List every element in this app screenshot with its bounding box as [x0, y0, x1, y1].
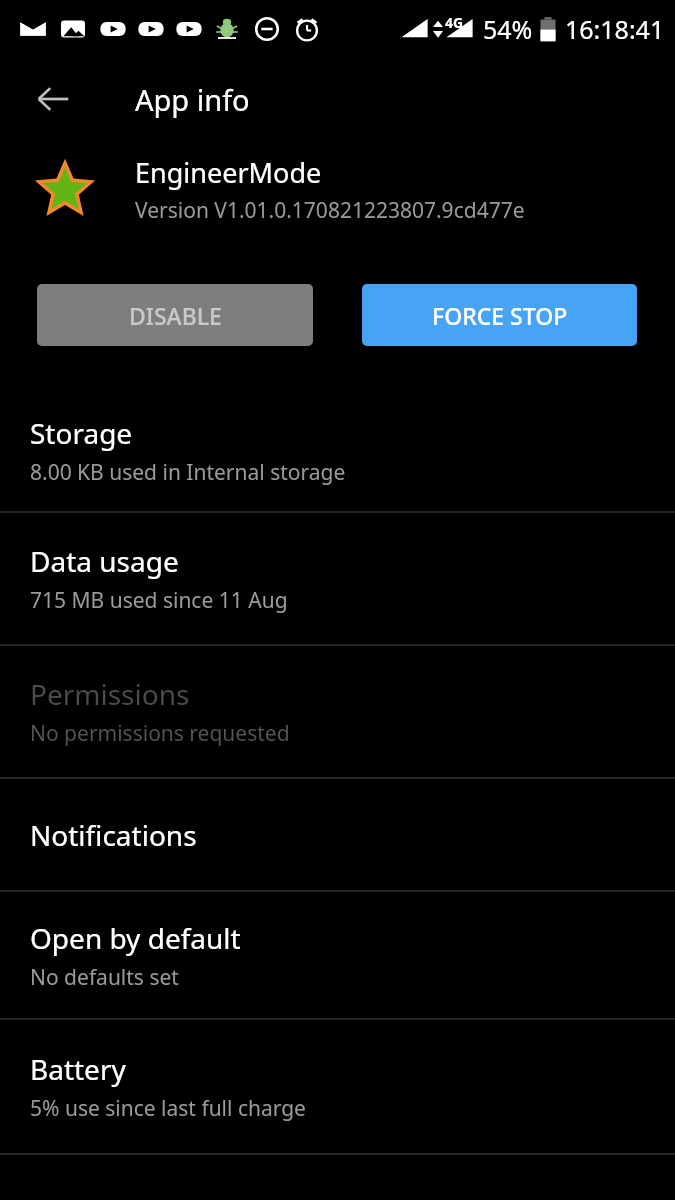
- staticText: Permissions: [30, 675, 190, 713]
- button[interactable]: Permissions: [0, 646, 675, 777]
- button[interactable]: FORCE STOP: [362, 284, 637, 346]
- staticText: DISABLE: [129, 300, 222, 331]
- button[interactable]: Back: [20, 66, 86, 132]
- staticText: 5% use since last full charge: [30, 1094, 306, 1123]
- staticText: 54%: [483, 12, 533, 46]
- staticText: Notifications: [30, 816, 197, 854]
- staticText: 4G: [445, 13, 464, 32]
- button[interactable]: Battery: [0, 1020, 675, 1153]
- staticText: Storage: [30, 414, 133, 452]
- button[interactable]: Storage: [0, 389, 675, 511]
- staticText: Data usage: [30, 542, 179, 580]
- staticText: Battery: [30, 1050, 126, 1088]
- staticText: 16:18:41: [565, 12, 665, 46]
- staticText: 8.00 KB used in Internal storage: [30, 458, 346, 487]
- staticText: App info: [135, 80, 250, 119]
- button[interactable]: Notifications: [0, 779, 675, 890]
- staticText: Version V1.01.0.170821223807.9cd477e: [135, 196, 525, 225]
- staticText: 715 MB used since 11 Aug: [30, 586, 288, 615]
- staticText: Open by default: [30, 919, 241, 957]
- staticText: No permissions requested: [30, 719, 290, 748]
- button[interactable]: Open by default: [0, 892, 675, 1018]
- button[interactable]: DISABLE: [37, 284, 313, 346]
- staticText: FORCE STOP: [432, 300, 568, 331]
- staticText: EngineerMode: [135, 154, 322, 191]
- staticText: No defaults set: [30, 963, 179, 992]
- button[interactable]: Data usage: [0, 513, 675, 644]
